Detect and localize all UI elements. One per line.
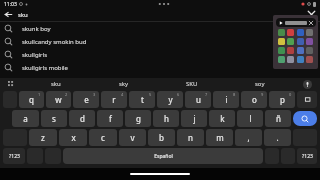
button[interactable]: n	[177, 129, 204, 146]
staticText: n	[188, 132, 193, 143]
staticText: w	[55, 94, 62, 105]
button[interactable]: SKU	[158, 78, 226, 90]
button[interactable]: f	[97, 110, 123, 127]
button[interactable]: g	[125, 110, 151, 127]
button[interactable]: skunk boy	[0, 22, 320, 35]
staticText: ,	[247, 132, 250, 143]
button[interactable]: q	[19, 91, 44, 108]
button[interactable]: b	[148, 129, 175, 146]
button[interactable]: .	[264, 129, 291, 146]
button[interactable]: sku	[18, 8, 306, 21]
staticText: 7	[205, 92, 208, 97]
staticText: Español	[154, 153, 173, 160]
staticText: k	[220, 113, 225, 124]
staticText: 4	[121, 92, 124, 97]
staticText: z	[41, 132, 45, 143]
button[interactable]: skullgirls	[0, 48, 320, 61]
staticText: p	[280, 94, 285, 105]
button[interactable]: y	[157, 91, 183, 108]
button[interactable]: ñ	[265, 110, 291, 127]
button[interactable]: j	[181, 110, 207, 127]
button[interactable]: ,	[235, 129, 262, 146]
button[interactable]: h	[153, 110, 179, 127]
staticText: skunk boy	[22, 25, 51, 33]
button[interactable]: d	[69, 110, 95, 127]
button[interactable]: t	[129, 91, 155, 108]
button[interactable]: Español	[63, 148, 263, 164]
button[interactable]: Clear search	[306, 9, 317, 20]
button[interactable]: skullgirls mobile	[0, 61, 320, 74]
button[interactable]: r	[101, 91, 127, 108]
staticText: sky	[119, 80, 129, 88]
staticText: m	[216, 132, 224, 143]
button[interactable]: a	[12, 110, 39, 127]
button[interactable]: Voice input	[294, 78, 320, 90]
staticText: 2	[65, 92, 68, 97]
staticText: 8	[233, 92, 236, 97]
staticText: u	[196, 94, 201, 105]
staticText: skullgirls mobile	[22, 64, 68, 72]
staticText: sku	[51, 80, 61, 88]
button[interactable]: c	[89, 129, 117, 146]
staticText: 0	[289, 92, 292, 97]
staticText: 6	[177, 92, 180, 97]
button[interactable]: l	[237, 110, 263, 127]
staticText: s	[52, 113, 56, 124]
staticText: b	[159, 132, 164, 143]
staticText: x	[71, 132, 76, 143]
button[interactable]: soy	[226, 78, 294, 90]
button[interactable]: Backspace	[297, 91, 317, 108]
staticText: q	[29, 94, 34, 105]
staticText: l	[249, 113, 252, 124]
button[interactable]: Search	[293, 111, 317, 126]
button[interactable]: ?123	[297, 148, 317, 164]
button[interactable]: x	[59, 129, 87, 146]
staticText: r	[112, 94, 116, 105]
staticText: ?123	[9, 153, 20, 160]
staticText: h	[164, 113, 169, 124]
button[interactable]: p	[269, 91, 295, 108]
staticText: f	[109, 113, 112, 124]
staticText: skullgirls	[22, 51, 48, 59]
button[interactable]: i	[213, 91, 239, 108]
staticText: ñ	[276, 113, 281, 124]
button[interactable]: Picture in picture video	[273, 15, 318, 69]
button[interactable]: e	[73, 91, 99, 108]
button[interactable]: sku	[22, 78, 90, 90]
button[interactable]: k	[209, 110, 235, 127]
staticText: 5	[149, 92, 152, 97]
staticText: SKU	[186, 80, 198, 88]
staticText: o	[252, 94, 257, 105]
staticText: y	[168, 94, 173, 105]
button[interactable]: Clipboard	[0, 78, 22, 90]
button[interactable]: v	[119, 129, 146, 146]
staticText: 11:03	[4, 1, 17, 8]
button[interactable]: w	[46, 91, 71, 108]
staticText: t	[141, 94, 144, 105]
button[interactable]: s	[41, 110, 67, 127]
staticText: sku	[18, 11, 28, 19]
button[interactable]: m	[206, 129, 233, 146]
staticText: 3	[93, 92, 96, 97]
staticText: j	[193, 113, 196, 124]
button[interactable]: ?123	[3, 148, 25, 164]
button[interactable]: Back	[3, 9, 14, 20]
button[interactable]: o	[241, 91, 267, 108]
staticText: d	[80, 113, 85, 124]
staticText: ?123	[302, 153, 313, 160]
button[interactable]: skullcandy smokin bud	[0, 35, 320, 48]
button[interactable]: sky	[90, 78, 158, 90]
button[interactable]: z	[29, 129, 57, 146]
staticText: skullcandy smokin bud	[22, 38, 87, 46]
button[interactable]: u	[185, 91, 211, 108]
staticText: g	[136, 113, 141, 124]
staticText: soy	[255, 80, 265, 88]
staticText: e	[84, 94, 89, 105]
